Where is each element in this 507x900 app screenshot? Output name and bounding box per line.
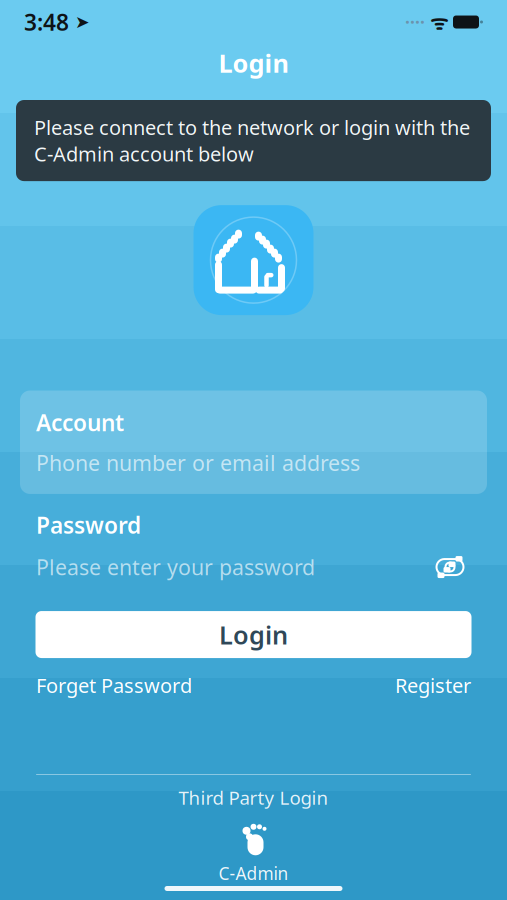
staticText: Phone number or email address — [36, 449, 360, 477]
button[interactable]: Login — [35, 611, 471, 658]
staticText: Register — [395, 672, 471, 699]
staticText: Please connect to the network or login w… — [34, 114, 470, 167]
staticText: Account — [36, 407, 124, 438]
button[interactable]: C-Admin — [218, 823, 288, 885]
button[interactable]: Show password — [429, 551, 471, 583]
staticText: Third Party Login — [178, 785, 328, 810]
button[interactable]: Forget Password — [36, 672, 192, 699]
staticText: Please enter your password — [36, 553, 315, 581]
staticText: Login — [219, 618, 288, 651]
button[interactable]: Register — [395, 672, 471, 699]
staticText: Password — [36, 510, 141, 540]
button[interactable]: Account — [20, 390, 487, 494]
staticText: ➤ — [69, 12, 90, 32]
staticText: C-Admin — [218, 862, 288, 885]
staticText: ···· — [405, 10, 425, 33]
staticText: Forget Password — [36, 672, 192, 699]
staticText: 3:48 — [24, 7, 69, 37]
staticText: Login — [218, 46, 288, 80]
staticText: ᯤ — [425, 9, 453, 35]
